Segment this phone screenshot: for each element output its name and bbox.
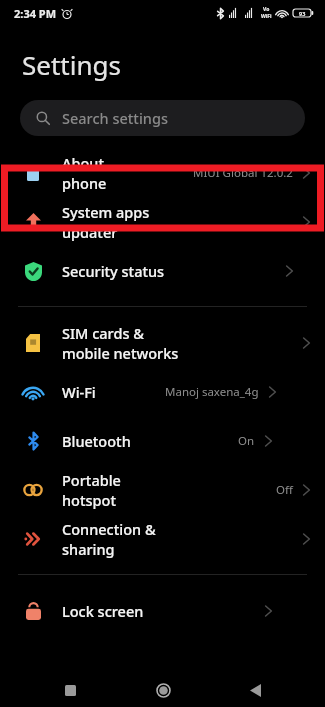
button[interactable]: Search settings [20,100,305,136]
button[interactable]: Connection & sharing [0,514,325,563]
button[interactable]: Security status [0,246,325,295]
button[interactable]: Wi-Fi [0,367,325,416]
staticText: Vo [263,6,270,13]
staticText: Manoj saxena_4g [165,384,259,400]
button[interactable]: Recents [47,673,93,707]
staticText: Search settings [62,108,168,128]
staticText: On [238,433,255,449]
staticText: WiFi [261,13,272,20]
button[interactable]: Home [140,673,186,707]
staticText: MIUI Global 12.0.2 [193,165,293,181]
button[interactable]: Bluetooth [0,416,325,465]
staticText: System apps updater [62,202,182,242]
staticText: Bluetooth [62,431,131,451]
staticText: Security status [62,261,165,281]
staticText: Lock screen [62,601,144,621]
staticText: About phone [62,153,127,193]
staticText: 2:34 PM [14,6,57,21]
staticText: Off [276,482,293,498]
staticText: Portable hotspot [62,470,169,510]
button[interactable]: Back [232,673,278,707]
button[interactable]: Portable hotspot [0,465,325,514]
button[interactable]: About phone [0,148,325,197]
staticText: Wi-Fi [62,382,96,402]
staticText: Connection & sharing [62,519,182,559]
staticText: Settings [22,47,121,82]
button[interactable]: SIM cards & mobile networks [0,318,325,367]
staticText: SIM cards & mobile networks [62,323,182,363]
button[interactable]: Lock screen [0,586,325,635]
staticText: 93 [299,10,306,17]
button[interactable]: System apps updater [0,197,325,246]
